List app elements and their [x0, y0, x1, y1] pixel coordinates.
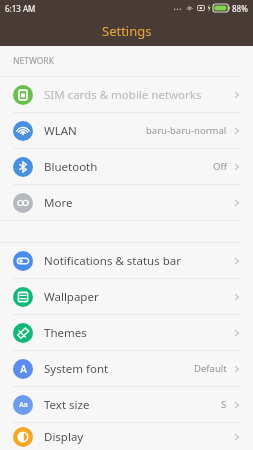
staticText: Notifications & status bar — [44, 253, 232, 269]
button[interactable]: More — [0, 185, 253, 220]
staticText: Off — [213, 160, 227, 173]
staticText: 88% — [232, 3, 248, 14]
staticText: System font — [44, 361, 194, 377]
button[interactable]: Notifications & status bar — [0, 243, 253, 278]
staticText: Themes — [44, 325, 232, 341]
button[interactable]: Wallpaper — [0, 279, 253, 314]
staticText: Settings — [102, 22, 152, 40]
staticText: baru-baru-normal — [146, 124, 227, 137]
staticText: Aa — [19, 400, 28, 410]
button[interactable]: Display — [0, 423, 253, 450]
staticText: Bluetooth — [44, 159, 213, 175]
staticText: SIM cards & mobile networks — [44, 87, 232, 103]
button[interactable]: WLAN — [0, 113, 253, 148]
staticText: A — [20, 362, 27, 376]
staticText: Wallpaper — [44, 289, 232, 305]
staticText: WLAN — [44, 123, 146, 139]
button[interactable]: Themes — [0, 315, 253, 350]
staticText: Display — [44, 429, 232, 445]
button[interactable]: Aa — [0, 387, 253, 422]
staticText: Text size — [44, 397, 221, 413]
staticText: Default — [194, 362, 227, 375]
staticText: 6:13 AM — [5, 3, 36, 14]
staticText: More — [44, 195, 232, 211]
button[interactable]: A — [0, 351, 253, 386]
staticText: NETWORK — [13, 55, 54, 67]
button[interactable]: SIM cards & mobile networks — [0, 77, 253, 112]
button[interactable]: Bluetooth — [0, 149, 253, 184]
staticText: S — [221, 398, 227, 411]
